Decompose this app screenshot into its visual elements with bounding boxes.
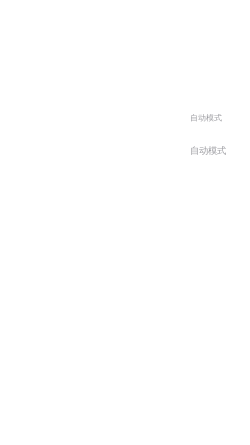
staticText: 自动模式 bbox=[190, 113, 222, 123]
staticText: 自动模式 bbox=[190, 145, 226, 156]
